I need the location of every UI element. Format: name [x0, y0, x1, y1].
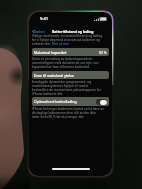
button[interactable]: Maksimal kapasitet — [32, 48, 109, 56]
staticText: 9:41 — [40, 16, 48, 21]
staticText: Dette er en måling av batterikapasiteten… — [32, 57, 104, 69]
staticText: Batteritilstand og lading — [52, 29, 94, 34]
staticText: Maksimal kapasitet — [34, 50, 67, 55]
staticText: Batteri — [34, 29, 45, 34]
staticText: Optimalisert batterilading — [34, 99, 77, 104]
staticText: Innebygde dynamiske programvare- og mask… — [32, 80, 104, 96]
staticText: iPhone forlenger batteriets levetid ved … — [32, 107, 104, 119]
staticText: Viktige merknader om batteritilstand og … — [32, 34, 104, 46]
button[interactable]: Batteri — [32, 28, 45, 35]
other: Optimalisert batterilading, på — [96, 99, 107, 105]
button[interactable]: Optimalisert batterilading — [32, 97, 109, 106]
staticText: 83 % — [99, 50, 107, 55]
staticText: Evne til maksimal ytelse — [34, 73, 74, 78]
button[interactable]: Evne til maksimal ytelse — [32, 71, 109, 79]
